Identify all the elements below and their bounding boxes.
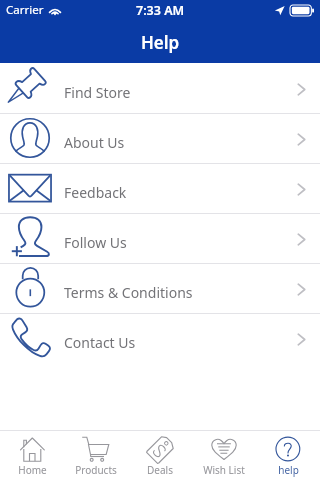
button[interactable]: Products	[64, 431, 128, 480]
staticText: About Us	[64, 133, 125, 152]
button[interactable]: Follow Us	[0, 213, 320, 263]
staticText: help	[278, 463, 299, 477]
button[interactable]: Terms & Conditions	[0, 263, 320, 313]
staticText: Terms & Conditions	[64, 283, 193, 302]
button[interactable]: Deals	[128, 431, 192, 480]
staticText: Follow Us	[64, 233, 127, 252]
button[interactable]: Contact Us	[0, 313, 320, 363]
staticText: Find Store	[64, 83, 131, 102]
button[interactable]: About Us	[0, 113, 320, 163]
staticText: Carrier	[6, 2, 44, 18]
staticText: 7:33 AM	[136, 2, 185, 19]
staticText: Home	[18, 463, 47, 477]
button[interactable]: Find Store	[0, 63, 320, 113]
staticText: Feedback	[64, 183, 127, 202]
staticText: Products	[75, 463, 117, 477]
button[interactable]: help	[256, 431, 320, 480]
button[interactable]: Home	[0, 431, 64, 480]
button[interactable]: Feedback	[0, 163, 320, 213]
staticText: Contact Us	[64, 333, 136, 352]
staticText: Wish List	[203, 463, 245, 477]
staticText: Help	[141, 31, 180, 54]
staticText: Deals	[147, 463, 173, 477]
button[interactable]: Wish List	[192, 431, 256, 480]
